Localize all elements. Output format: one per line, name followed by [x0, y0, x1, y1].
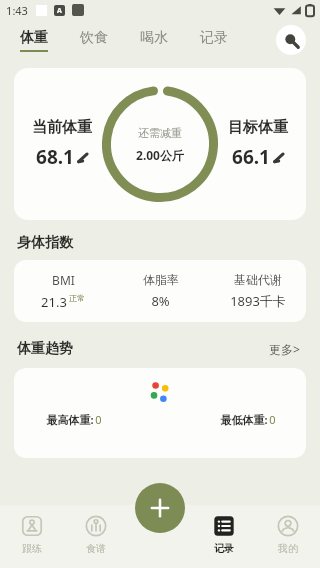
- button[interactable]: Add record: [135, 483, 185, 533]
- staticText: 1893千卡: [230, 292, 286, 310]
- staticText: 0: [269, 412, 276, 427]
- staticText: 目标体重: [228, 118, 288, 137]
- staticText: 最低体重:: [219, 412, 269, 427]
- staticText: BMI: [52, 272, 75, 288]
- staticText: 66.1: [232, 144, 270, 170]
- staticText: 2.00公斤: [136, 147, 184, 163]
- button[interactable]: 跟练: [0, 505, 64, 568]
- staticText: 最高体重:: [45, 412, 95, 427]
- staticText: 食谱: [86, 542, 106, 555]
- staticText: 1:43: [6, 3, 28, 18]
- button[interactable]: BMI: [14, 260, 306, 322]
- staticText: 我的: [278, 542, 298, 555]
- staticText: 正常: [69, 293, 85, 303]
- staticText: 更多>: [269, 341, 300, 357]
- button[interactable]: 喝水: [138, 29, 170, 52]
- staticText: 8%: [151, 292, 170, 310]
- staticText: 还需减重: [138, 126, 182, 140]
- staticText: 0: [95, 412, 102, 427]
- staticText: 喝水: [140, 29, 168, 47]
- staticText: 记录: [200, 29, 228, 47]
- button[interactable]: 记录: [192, 505, 256, 568]
- staticText: 记录: [214, 542, 234, 555]
- staticText: 21.3: [41, 293, 67, 311]
- button[interactable]: 饮食: [78, 29, 110, 52]
- staticText: 饮食: [80, 29, 108, 47]
- button[interactable]: Search: [276, 25, 306, 55]
- staticText: 体脂率: [143, 272, 179, 287]
- button[interactable]: 记录: [198, 29, 230, 52]
- button[interactable]: 当前体重: [24, 118, 100, 170]
- staticText: 体重: [20, 29, 48, 47]
- button[interactable]: 最高体重:: [14, 368, 306, 458]
- staticText: 68.1: [36, 144, 74, 170]
- button[interactable]: 我的: [256, 505, 320, 568]
- staticText: 跟练: [22, 542, 42, 555]
- button[interactable]: 体重: [18, 29, 50, 52]
- staticText: 体重趋势: [17, 340, 73, 358]
- button[interactable]: 更多>: [266, 338, 303, 360]
- staticText: 基础代谢: [234, 272, 282, 287]
- button[interactable]: 食谱: [64, 505, 128, 568]
- button[interactable]: 当前体重: [14, 68, 306, 220]
- staticText: A: [57, 6, 62, 16]
- button[interactable]: 目标体重: [220, 118, 296, 170]
- staticText: 身体指数: [17, 234, 73, 252]
- staticText: 当前体重: [32, 118, 92, 137]
